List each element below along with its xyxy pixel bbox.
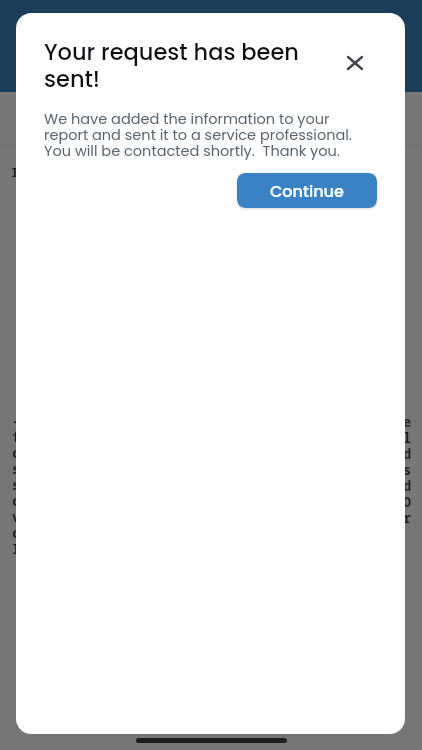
staticText: - f c s s c v c I: [12, 413, 21, 557]
staticText: I: [11, 163, 19, 181]
staticText: We have added the information to your re…: [44, 112, 364, 160]
staticText: Continue: [270, 180, 344, 202]
button[interactable]: Continue: [237, 173, 377, 208]
button[interactable]: Close: [333, 41, 377, 85]
staticText: e l, d s d, O r: [403, 414, 411, 526]
staticText: Your request has been sent!: [44, 40, 344, 94]
